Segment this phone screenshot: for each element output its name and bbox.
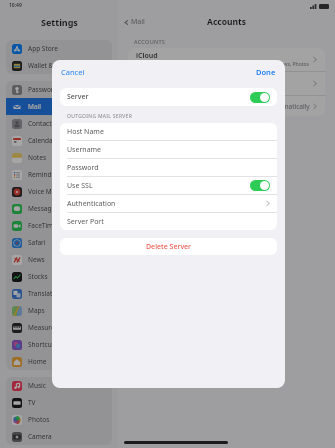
button[interactable]: Contacts xyxy=(6,115,112,132)
staticText: Delete Server xyxy=(146,242,192,252)
button[interactable]: Wallet & Apple Pay xyxy=(6,57,112,74)
button[interactable]: Music xyxy=(6,377,112,394)
staticText: 10:49 xyxy=(9,2,22,9)
button[interactable]: Server Port xyxy=(60,213,277,230)
button[interactable]: App Store xyxy=(6,40,112,57)
button[interactable]: Toggle on xyxy=(250,92,270,103)
button[interactable]: Camera xyxy=(6,428,112,445)
button[interactable]: TV xyxy=(6,394,112,411)
staticText: Automatically xyxy=(268,102,310,111)
button[interactable]: Passwords xyxy=(6,81,112,98)
button[interactable]: Fetch New Data xyxy=(128,96,325,116)
button[interactable]: Photos xyxy=(6,411,112,428)
button[interactable]: Cancel xyxy=(52,64,91,80)
button[interactable]: Safari xyxy=(6,234,112,251)
button[interactable]: Home xyxy=(6,353,112,370)
staticText: Home xyxy=(28,357,47,366)
staticText: Camera xyxy=(28,432,52,441)
button[interactable]: Notes xyxy=(6,149,112,166)
staticText: Settings xyxy=(41,16,78,28)
staticText: App Store xyxy=(28,44,58,53)
button[interactable]: Mail xyxy=(6,98,112,115)
button[interactable]: Delete Server xyxy=(60,238,277,255)
button[interactable]: FaceTime xyxy=(6,217,112,234)
staticText: TV xyxy=(28,398,36,407)
button[interactable]: Voice Memos xyxy=(6,183,112,200)
staticText: Mail xyxy=(28,102,41,111)
button[interactable]: Translate xyxy=(6,285,112,302)
staticText: iCloud xyxy=(136,51,158,61)
button[interactable]: Server xyxy=(60,88,277,106)
staticText: Cancel xyxy=(61,67,85,77)
button[interactable]: Use SSL xyxy=(60,177,277,194)
staticText: Mail xyxy=(131,17,145,27)
staticText: Fetch New Data xyxy=(136,101,268,111)
staticText: Passwords xyxy=(28,85,61,94)
staticText: Contacts xyxy=(28,119,55,128)
staticText: Messages xyxy=(28,204,59,213)
button[interactable]: Host Name xyxy=(60,123,277,140)
staticText: ACCOUNTS xyxy=(134,38,166,45)
button[interactable]: Stocks xyxy=(6,268,112,285)
staticText: iCloud Drive, Contacts, Calendars, Safar… xyxy=(136,61,313,68)
button[interactable]: iCloud xyxy=(128,48,325,71)
staticText: Done xyxy=(256,67,276,77)
staticText: Maps xyxy=(28,306,45,315)
staticText: Password xyxy=(67,163,270,173)
button[interactable]: Username xyxy=(60,141,277,158)
staticText: Translate xyxy=(28,289,56,298)
staticText: Wallet & Apple Pay xyxy=(28,61,86,70)
staticText: Voice Memos xyxy=(28,187,69,196)
staticText: Username xyxy=(67,145,270,155)
staticText: Authentication xyxy=(67,199,266,209)
button[interactable]: Calendar xyxy=(6,132,112,149)
button[interactable]: Reminders xyxy=(6,166,112,183)
staticText: OUTGOING MAIL SERVER xyxy=(67,113,133,120)
button[interactable] xyxy=(128,72,325,95)
staticText: Server Port xyxy=(67,217,270,227)
button[interactable]: Measure xyxy=(6,319,112,336)
button[interactable]: Password xyxy=(60,159,277,176)
staticText: News xyxy=(28,255,45,264)
button[interactable]: Messages xyxy=(6,200,112,217)
staticText: Server xyxy=(67,92,250,102)
staticText: Measure xyxy=(28,323,55,332)
staticText: Photos xyxy=(28,415,50,424)
staticText: Accounts xyxy=(207,16,246,28)
staticText: FaceTime xyxy=(28,221,57,230)
staticText: Use SSL xyxy=(67,181,250,191)
staticText: Music xyxy=(28,381,46,390)
button[interactable]: Maps xyxy=(6,302,112,319)
button[interactable]: Mail xyxy=(124,17,145,27)
staticText: Notes xyxy=(28,153,46,162)
button[interactable]: Authentication xyxy=(60,195,277,212)
button[interactable]: Shortcuts xyxy=(6,336,112,353)
staticText: Safari xyxy=(28,238,46,247)
button[interactable]: News xyxy=(6,251,112,268)
staticText: Reminders xyxy=(28,170,61,179)
staticText: Calendar xyxy=(28,136,56,145)
button[interactable]: Toggle on xyxy=(250,180,270,191)
staticText: Stocks xyxy=(28,272,48,281)
staticText: Shortcuts xyxy=(28,340,58,349)
staticText: Host Name xyxy=(67,127,270,137)
button[interactable]: Done xyxy=(250,64,285,80)
